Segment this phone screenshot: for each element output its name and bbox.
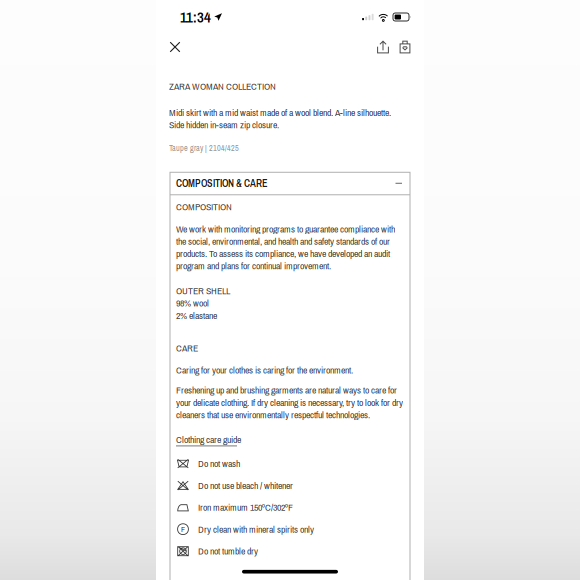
staticText: Do not wash [198,457,240,470]
staticText: ZARA WOMAN COLLECTION [169,80,276,92]
staticText: COMPOSITION & CARE [176,177,268,190]
staticText: Do not use bleach / whitener [198,479,293,491]
button[interactable]: COMPOSITION & CARE [170,172,410,194]
button[interactable]: Do not use bleach / whitener [176,474,404,496]
staticText: Dry clean with mineral spirits only [198,523,314,535]
staticText: CARE [176,342,198,354]
staticText: 11:34 [180,7,211,27]
staticText: OUTER SHELL 98% wool 2% elastane [176,285,230,322]
staticText: Caring for your clothes is caring for th… [176,364,353,376]
staticText: Midi skirt with a mid waist made of a wo… [169,106,391,131]
button[interactable]: F [176,518,404,540]
button[interactable]: Share [372,36,394,58]
staticText: We work with monitoring programs to guar… [176,223,395,272]
button[interactable]: Clothing care guide [176,433,241,446]
staticText: Clothing care guide [176,433,241,445]
staticText: Freshening up and brushing garments are … [176,384,403,421]
button[interactable]: Shopping bag [394,36,416,58]
button[interactable]: Close [162,34,188,60]
staticText: F [181,524,185,535]
staticText: COMPOSITION [176,200,232,213]
staticText: Do not tumble dry [198,545,258,557]
staticText: Iron maximum 150ºC/302ºF [198,501,293,513]
staticText: Taupe gray | 2104/425 [169,143,239,153]
button[interactable]: Iron maximum 150ºC/302ºF [176,496,404,518]
button[interactable]: Do not wash [176,452,404,474]
button[interactable]: Do not tumble dry [176,540,404,562]
